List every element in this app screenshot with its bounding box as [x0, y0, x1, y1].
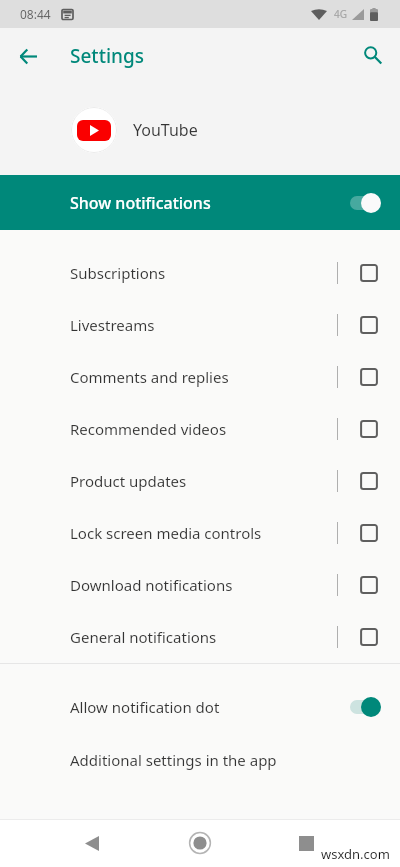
staticText: Show notifications [70, 192, 211, 214]
button[interactable]: Recents [282, 819, 330, 867]
button[interactable]: Comments and replies [0, 351, 400, 403]
staticText: wsxdn.com [321, 845, 390, 863]
staticText: Recommended videos [70, 419, 227, 439]
button[interactable]: Subscriptions [0, 247, 400, 299]
staticText: Subscriptions [70, 263, 166, 283]
button[interactable]: Search [347, 28, 400, 84]
staticText: Allow notification dot [70, 697, 220, 717]
button[interactable]: Recommended videos [0, 403, 400, 455]
staticText: General notifications [70, 627, 217, 647]
button[interactable]: Lock screen media controls [0, 507, 400, 559]
button[interactable]: Livestreams [0, 299, 400, 351]
button[interactable]: Download notifications [0, 559, 400, 611]
staticText: Lock screen media controls [70, 523, 262, 543]
staticText: Comments and replies [70, 367, 229, 387]
staticText: Additional settings in the app [70, 750, 277, 770]
staticText: 4G [334, 7, 347, 21]
staticText: Product updates [70, 471, 187, 491]
button[interactable]: General notifications [0, 611, 400, 663]
staticText: 08:44 [20, 6, 51, 22]
staticText: Settings [70, 43, 144, 69]
button[interactable]: Back [68, 819, 116, 867]
button[interactable]: Product updates [0, 455, 400, 507]
staticText: YouTube [133, 119, 198, 141]
button[interactable]: Home [176, 819, 224, 867]
button[interactable]: Show notifications [0, 175, 400, 230]
button[interactable]: Allow notification dot [0, 680, 400, 733]
staticText: Livestreams [70, 315, 155, 335]
staticText: Download notifications [70, 575, 233, 595]
button[interactable]: Back [0, 28, 56, 84]
button[interactable]: Additional settings in the app [0, 733, 400, 786]
